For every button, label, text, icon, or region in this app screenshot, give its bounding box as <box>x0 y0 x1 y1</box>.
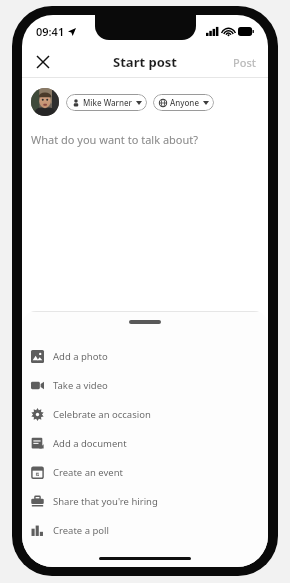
button[interactable]: Profile photo <box>31 88 59 116</box>
button[interactable]: Anyone <box>153 94 214 111</box>
button[interactable]: Share that you're hiring <box>22 487 268 516</box>
button[interactable]: Create an event <box>22 458 268 487</box>
staticText: Create a poll <box>53 524 109 537</box>
button[interactable]: Celebrate an occasion <box>22 400 268 429</box>
staticText: Start post <box>113 53 177 71</box>
button[interactable]: Mike Warner <box>66 94 147 111</box>
staticText: Take a video <box>53 379 108 392</box>
staticText: 09:41 <box>36 24 65 39</box>
staticText: Create an event <box>53 466 124 479</box>
button[interactable]: Add a photo <box>22 342 268 371</box>
button[interactable]: Create a poll <box>22 516 268 545</box>
button[interactable]: Add a document <box>22 429 268 458</box>
staticText: Share that you're hiring <box>53 495 158 508</box>
staticText: Celebrate an occasion <box>53 408 151 421</box>
button[interactable]: Close <box>30 49 56 75</box>
staticText: Add a photo <box>53 350 108 363</box>
staticText: Add a document <box>53 437 127 450</box>
button[interactable]: Post <box>221 49 268 76</box>
staticText: Post <box>233 55 256 70</box>
staticText: Anyone <box>170 97 199 108</box>
staticText: What do you want to talk about? <box>31 132 199 147</box>
staticText: Mike Warner <box>83 97 132 108</box>
button[interactable]: Take a video <box>22 371 268 400</box>
